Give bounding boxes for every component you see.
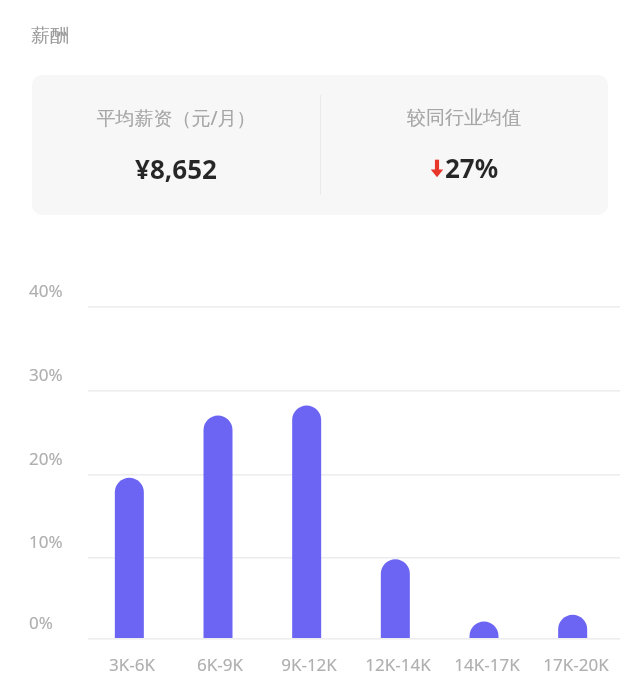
staticText: 17K-20K xyxy=(543,653,609,676)
staticText: 较同行业均值 xyxy=(407,106,521,130)
staticText: 14K-17K xyxy=(454,653,520,676)
staticText: 20% xyxy=(29,447,85,470)
staticText: ¥8,652 xyxy=(135,151,217,186)
button[interactable]: 3K-6K xyxy=(88,653,176,676)
staticText: 3K-6K xyxy=(109,653,155,676)
other: Decrease xyxy=(429,155,445,181)
button[interactable]: 14K-17K xyxy=(442,653,531,676)
staticText: 0% xyxy=(29,611,85,634)
staticText: 薪酬 xyxy=(31,24,69,48)
staticText: 9K-12K xyxy=(281,653,337,676)
staticText: 40% xyxy=(29,279,85,302)
staticText: 30% xyxy=(29,363,85,386)
button[interactable]: 6K-9K xyxy=(176,653,264,676)
staticText: 6K-9K xyxy=(197,653,243,676)
staticText: 平均薪资（元/月） xyxy=(96,105,256,131)
button[interactable]: 平均薪资（元/月） xyxy=(32,75,608,215)
button[interactable]: 17K-20K xyxy=(531,653,620,676)
button[interactable]: 12K-14K xyxy=(353,653,442,676)
staticText: 10% xyxy=(29,530,85,553)
button[interactable]: 9K-12K xyxy=(264,653,353,676)
staticText: 12K-14K xyxy=(365,653,431,676)
staticText: 27% xyxy=(445,150,499,185)
